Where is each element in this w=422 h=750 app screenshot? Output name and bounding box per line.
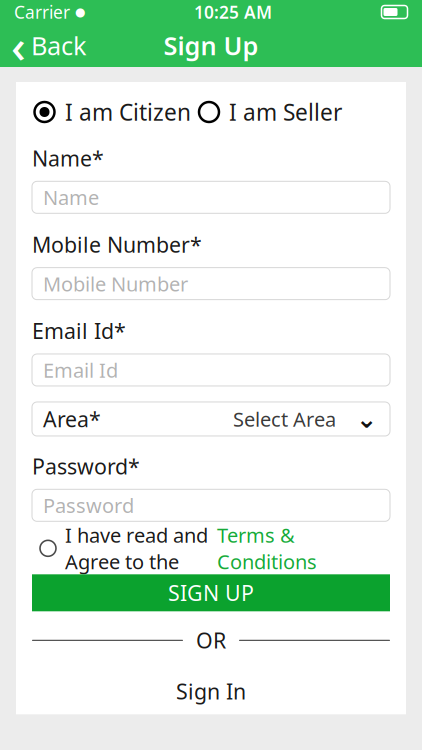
staticText: Password* (32, 452, 140, 480)
button[interactable]: I have read and Agree to the (32, 533, 390, 563)
staticText: Email Id (43, 357, 118, 383)
button[interactable]: SIGN UP (32, 574, 390, 611)
button[interactable]: I am Seller (199, 95, 342, 129)
button[interactable]: Area* (32, 402, 390, 436)
staticText: Name (43, 184, 99, 211)
staticText: Mobile Number* (32, 230, 202, 259)
staticText: ‹ (11, 15, 26, 76)
staticText: Email Id* (32, 317, 126, 345)
staticText: Sign Up (163, 29, 258, 62)
staticText: Mobile Number (43, 270, 188, 297)
staticText: OR (196, 626, 226, 654)
staticText: Carrier (14, 0, 70, 23)
staticText: Sign In (176, 677, 246, 705)
button[interactable]: I am Citizen (34, 95, 191, 129)
staticText: Password (43, 492, 134, 519)
staticText: Name* (32, 144, 104, 172)
staticText: I am Seller (229, 97, 342, 127)
staticText: I have read and Agree to the (65, 522, 208, 575)
staticText: Area* (43, 405, 101, 433)
button[interactable]: ‹ (0, 24, 97, 67)
staticText: ● (75, 5, 85, 19)
staticText: 10:25 AM (194, 0, 272, 23)
staticText: Back (31, 29, 87, 62)
staticText: Terms & Conditions (217, 522, 317, 575)
button[interactable]: Sign In (16, 674, 406, 708)
staticText: ⌄ (356, 405, 377, 433)
staticText: I am Citizen (65, 97, 191, 127)
staticText: SIGN UP (168, 579, 254, 607)
staticText: Select Area (233, 406, 336, 432)
